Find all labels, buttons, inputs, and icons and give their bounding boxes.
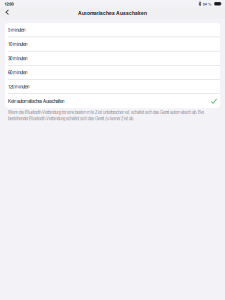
- button[interactable]: Back: [0, 7, 12, 18]
- staticText: 30 minuten: [8, 55, 27, 61]
- staticText: 12:03: [4, 1, 13, 7]
- button[interactable]: Kein automatisches Ausschalten: [5, 94, 220, 108]
- button[interactable]: 120 minuten: [5, 80, 220, 94]
- staticText: 60 minuten: [8, 69, 27, 76]
- button[interactable]: 10 minuten: [5, 37, 220, 51]
- staticText: 120 minuten: [8, 83, 29, 90]
- staticText: Automatisches Ausschalten: [78, 9, 147, 17]
- button[interactable]: 30 minuten: [5, 51, 220, 66]
- button[interactable]: 60 minuten: [5, 66, 220, 80]
- staticText: 64 %: [203, 1, 212, 7]
- staticText: 5 minuten: [8, 27, 25, 33]
- button[interactable]: 5 minuten: [5, 23, 220, 37]
- staticText: Wenn die Bluetooth-Verbindung für eine b…: [8, 109, 204, 121]
- staticText: 10 minuten: [8, 41, 27, 47]
- staticText: Kein automatisches Ausschalten: [8, 98, 64, 104]
